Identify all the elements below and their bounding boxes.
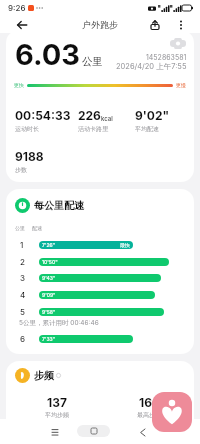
staticText: 平均步频 — [45, 411, 69, 419]
staticText: 226 — [78, 108, 101, 123]
staticText: 更快 — [14, 82, 24, 88]
staticText: 公里 — [82, 55, 103, 68]
staticText: 最快 — [120, 242, 130, 248]
staticText: 6 — [20, 334, 26, 344]
staticText: 1 — [20, 240, 24, 250]
staticText: 公里 — [15, 225, 25, 231]
staticText: 4 — [20, 290, 26, 300]
staticText: 户外跑步 — [82, 19, 118, 30]
staticText: 9'09" — [42, 292, 56, 298]
staticText: 137 — [47, 395, 67, 410]
button[interactable]: Share — [146, 16, 164, 33]
button[interactable]: Recents — [45, 422, 65, 442]
staticText: 每公里配速 — [34, 199, 84, 212]
staticText: 166 — [139, 395, 160, 410]
staticText: 最高步频 — [137, 411, 161, 419]
button[interactable]: Back — [132, 422, 152, 442]
staticText: 9'58" — [42, 309, 56, 315]
staticText: 更慢 — [176, 82, 186, 88]
staticText: 运动时长 — [15, 125, 39, 133]
staticText: 9:26 — [8, 3, 26, 13]
button[interactable]: More options — [172, 16, 190, 33]
staticText: 2026/4/20 上午7:55 — [116, 62, 187, 71]
staticText: 配速 — [32, 225, 42, 231]
staticText: 步数 — [15, 166, 27, 174]
staticText: 活动卡路里 — [78, 125, 108, 133]
staticText: 3 — [20, 273, 26, 283]
staticText: kcal — [101, 115, 113, 122]
staticText: 7'33" — [42, 336, 56, 342]
staticText: 2 — [20, 257, 25, 267]
staticText: 步频 — [34, 369, 54, 382]
staticText: 00:54:33 — [15, 108, 71, 123]
staticText: 10'50" — [42, 259, 58, 265]
staticText: 6.03 — [15, 37, 81, 72]
staticText: 平均配速 — [135, 125, 159, 133]
button[interactable]: Home — [77, 425, 110, 437]
button[interactable]: Health assistant — [152, 392, 192, 432]
staticText: 9'43" — [42, 275, 56, 281]
staticText: 7'26" — [42, 242, 56, 248]
staticText: 1452863581 — [146, 53, 187, 61]
button[interactable]: Back — [13, 16, 31, 33]
staticText: 9188 — [15, 149, 44, 164]
staticText: 9'02" — [135, 108, 170, 123]
staticText: 5公里，累计用时 00:46:46 — [19, 319, 99, 327]
staticText: 5 — [20, 307, 25, 317]
